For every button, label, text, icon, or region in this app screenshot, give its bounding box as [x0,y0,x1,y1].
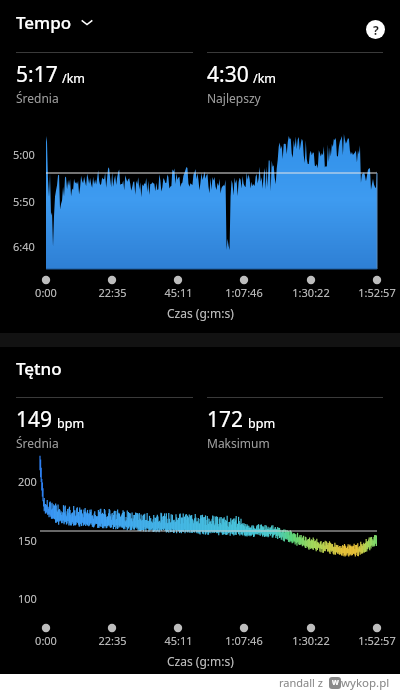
staticText: 22:35 [98,285,127,300]
staticText: wykop.pl [341,675,390,691]
staticText: 149 [16,405,53,434]
staticText: Czas (g:m:s) [167,305,234,321]
staticText: 5:17 [16,60,58,89]
staticText: 4:30 [207,60,249,89]
button[interactable]: Help [366,20,385,39]
staticText: 1:30:22 [292,285,330,300]
staticText: Tętno [16,357,62,380]
staticText: 172 [207,405,244,434]
staticText: 0:00 [35,633,57,648]
staticText: 1:30:22 [292,633,330,648]
staticText: 0:00 [35,285,57,300]
staticText: 1:52:57 [358,285,396,300]
staticText: Czas (g:m:s) [167,653,234,669]
staticText: Średnia [16,435,59,451]
staticText: Najlepszy [207,90,261,106]
staticText: /km [253,70,277,87]
button[interactable]: Tempo [0,0,400,44]
staticText: 150 [18,533,37,548]
staticText: bpm [57,415,85,432]
staticText: 1:52:57 [358,633,396,648]
staticText: 200 [18,474,37,489]
staticText: 22:35 [98,633,127,648]
staticText: Tempo [16,11,72,34]
staticText: 1:07:46 [225,285,263,300]
staticText: 100 [18,591,37,606]
staticText: 45:11 [164,285,193,300]
staticText: 1:07:46 [225,633,263,648]
staticText: Średnia [16,90,59,106]
staticText: 45:11 [164,633,193,648]
staticText: ? [373,22,379,38]
staticText: randall z [279,675,323,690]
staticText: 6:40 [13,239,35,254]
staticText: bpm [248,415,276,432]
staticText: Maksimum [207,435,270,451]
staticText: /km [62,70,86,87]
staticText: 5:00 [13,147,35,162]
staticText: 5:50 [13,194,35,209]
staticText: W [332,678,339,688]
